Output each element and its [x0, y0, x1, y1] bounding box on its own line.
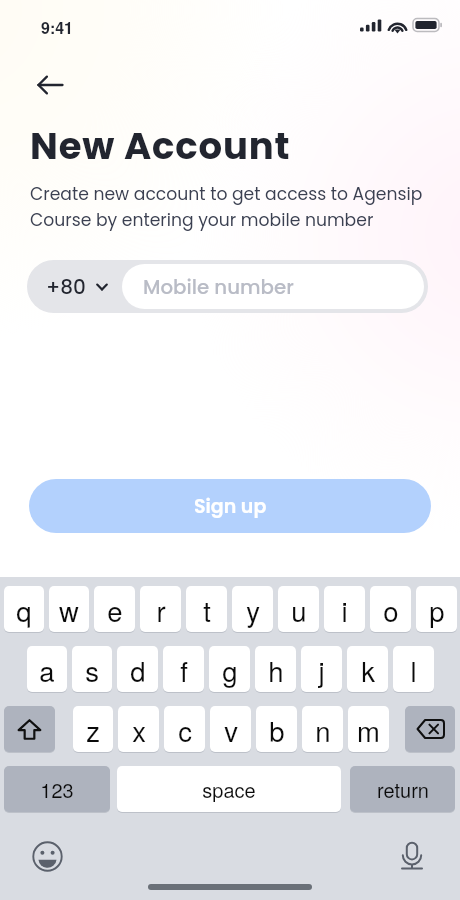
- button[interactable]: e: [94, 586, 135, 632]
- staticText: y: [246, 590, 260, 629]
- staticText: w: [59, 590, 79, 629]
- button[interactable]: m: [348, 706, 389, 752]
- staticText: v: [224, 710, 238, 749]
- button[interactable]: x: [118, 706, 159, 752]
- button[interactable]: y: [232, 586, 273, 632]
- button[interactable]: n: [302, 706, 343, 752]
- button[interactable]: w: [49, 586, 89, 632]
- button[interactable]: space: [117, 766, 341, 812]
- staticText: m: [357, 710, 380, 749]
- button[interactable]: return: [350, 766, 455, 812]
- staticText: n: [315, 710, 331, 749]
- button[interactable]: Dictation: [394, 838, 430, 874]
- button[interactable]: s: [72, 646, 112, 692]
- staticText: f: [180, 650, 188, 689]
- staticText: c: [178, 710, 192, 749]
- button[interactable]: b: [256, 706, 297, 752]
- button[interactable]: Back: [29, 64, 71, 106]
- button[interactable]: l: [393, 646, 434, 692]
- button[interactable]: Sign up: [29, 479, 431, 533]
- staticText: space: [202, 775, 256, 804]
- staticText: x: [132, 710, 146, 749]
- staticText: Mobile number: [143, 273, 294, 301]
- button[interactable]: q: [4, 586, 44, 632]
- staticText: q: [16, 590, 32, 629]
- staticText: i: [341, 590, 348, 629]
- button[interactable]: i: [324, 586, 365, 632]
- button[interactable]: Backspace: [405, 706, 455, 752]
- staticText: u: [291, 590, 307, 629]
- button[interactable]: p: [416, 586, 457, 632]
- staticText: o: [383, 590, 399, 629]
- staticText: l: [410, 650, 417, 689]
- staticText: s: [85, 650, 99, 689]
- button[interactable]: u: [278, 586, 319, 632]
- button[interactable]: v: [210, 706, 251, 752]
- button[interactable]: Shift: [4, 706, 55, 752]
- staticText: return: [377, 775, 429, 804]
- staticText: p: [429, 590, 445, 629]
- staticText: New Account: [30, 120, 291, 172]
- button[interactable]: Emoji: [29, 838, 65, 874]
- button[interactable]: r: [140, 586, 181, 632]
- button[interactable]: 123: [4, 766, 110, 812]
- button[interactable]: g: [209, 646, 250, 692]
- staticText: k: [361, 650, 375, 689]
- staticText: a: [39, 650, 55, 689]
- staticText: r: [156, 590, 166, 629]
- button[interactable]: t: [186, 586, 227, 632]
- staticText: +80: [46, 273, 86, 301]
- staticText: j: [318, 650, 325, 689]
- staticText: Create new account to get access to Agen…: [30, 182, 423, 232]
- button[interactable]: c: [164, 706, 205, 752]
- button[interactable]: k: [347, 646, 388, 692]
- button[interactable]: +80: [27, 260, 122, 313]
- staticText: 123: [40, 775, 74, 804]
- staticText: h: [268, 650, 284, 689]
- staticText: d: [130, 650, 146, 689]
- button[interactable]: d: [117, 646, 158, 692]
- staticText: e: [107, 590, 123, 629]
- staticText: 9:41: [41, 16, 74, 39]
- button[interactable]: j: [301, 646, 342, 692]
- button[interactable]: o: [370, 586, 411, 632]
- staticText: Sign up: [194, 493, 267, 520]
- button[interactable]: z: [73, 706, 113, 752]
- staticText: t: [203, 590, 211, 629]
- button[interactable]: a: [27, 646, 67, 692]
- staticText: g: [222, 650, 238, 689]
- button[interactable]: f: [163, 646, 204, 692]
- staticText: b: [269, 710, 285, 749]
- button[interactable]: Mobile number: [122, 264, 424, 309]
- staticText: z: [86, 710, 100, 749]
- button[interactable]: h: [255, 646, 296, 692]
